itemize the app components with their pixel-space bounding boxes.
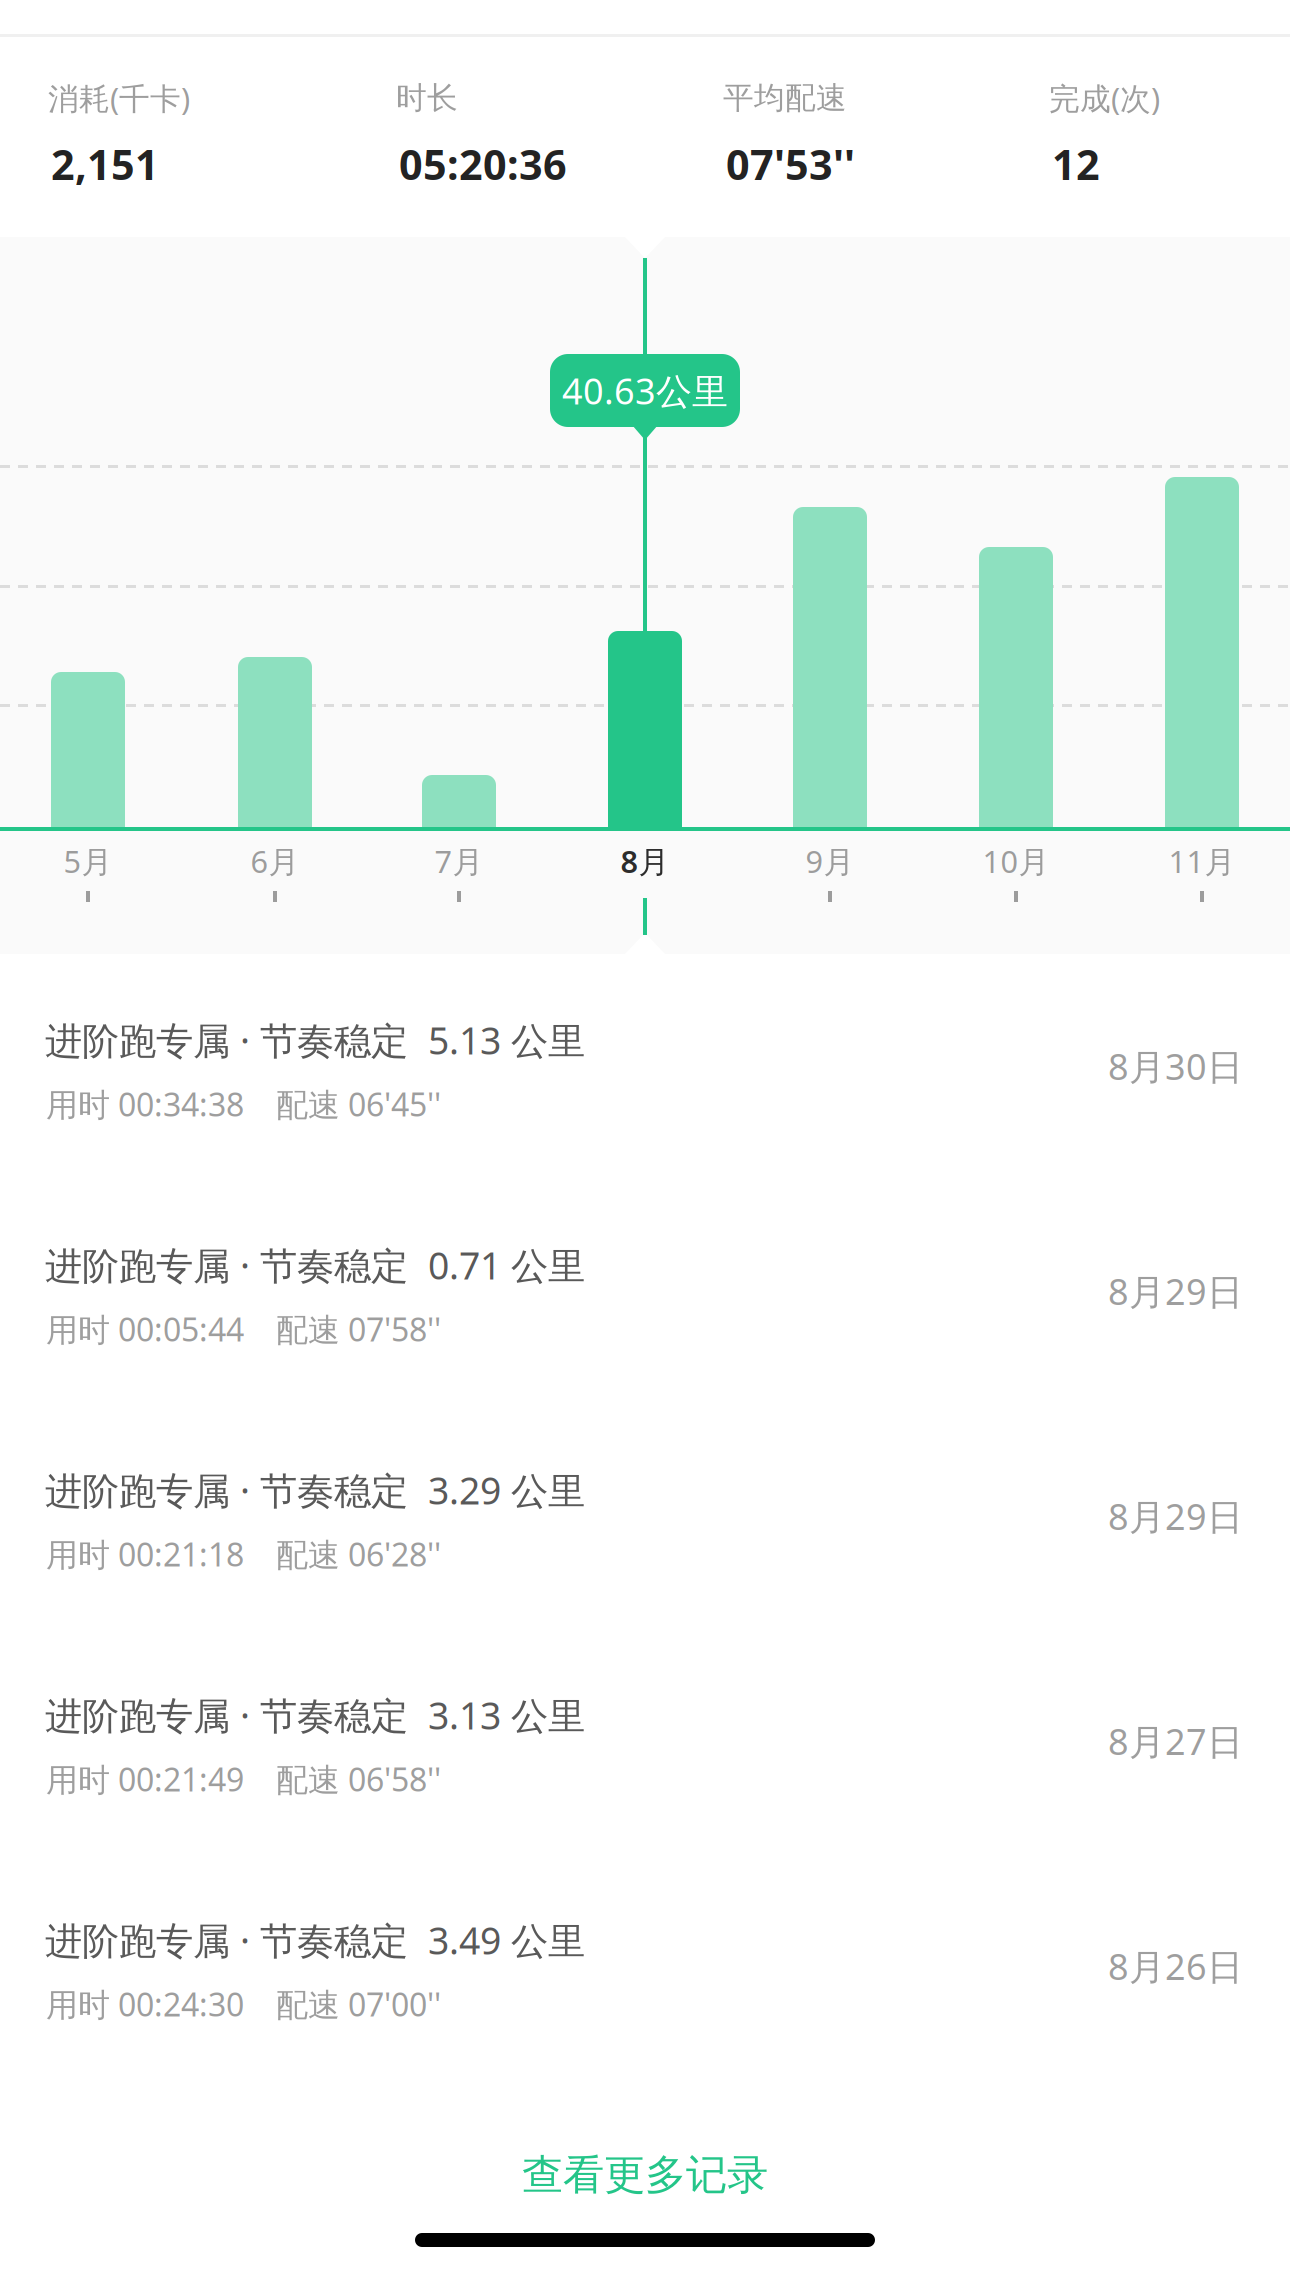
staticText: 用时 00:34:38 配速 06'45''	[46, 1083, 441, 1125]
staticText: 用时 00:24:30 配速 07'00''	[46, 1983, 441, 2025]
staticText: 2,151	[51, 137, 159, 191]
staticText: 7月	[434, 841, 483, 881]
staticText: 完成(次)	[1049, 78, 1160, 118]
staticText: 消耗(千卡)	[48, 78, 190, 118]
staticText: 进阶跑专属 · 节奏稳定 5.13 公里	[45, 1015, 585, 1065]
staticText: 12	[1052, 137, 1100, 191]
staticText: 8月26日	[1108, 1942, 1243, 1990]
button[interactable]: 进阶跑专属 · 节奏稳定 0.71 公里	[0, 1214, 1290, 1439]
staticText: 8月27日	[1108, 1717, 1243, 1765]
button[interactable]: 进阶跑专属 · 节奏稳定 5.13 公里	[0, 989, 1290, 1214]
staticText: 9月	[805, 841, 854, 881]
staticText: 10月	[982, 841, 1049, 881]
staticText: 查看更多记录	[522, 2150, 768, 2200]
staticText: 进阶跑专属 · 节奏稳定 3.13 公里	[45, 1690, 585, 1740]
staticText: 8月30日	[1108, 1042, 1243, 1090]
button[interactable]: 进阶跑专属 · 节奏稳定 3.13 公里	[0, 1664, 1290, 1889]
staticText: 11月	[1168, 841, 1235, 881]
staticText: 05:20:36	[399, 137, 567, 191]
staticText: 40.63公里	[562, 367, 728, 414]
staticText: 8月29日	[1108, 1492, 1243, 1540]
staticText: 进阶跑专属 · 节奏稳定 0.71 公里	[45, 1240, 585, 1290]
staticText: 时长	[396, 79, 458, 117]
staticText: 进阶跑专属 · 节奏稳定 3.29 公里	[45, 1465, 585, 1515]
staticText: 8月29日	[1108, 1267, 1243, 1315]
staticText: 5月	[63, 841, 112, 881]
button[interactable]: 进阶跑专属 · 节奏稳定 3.29 公里	[0, 1439, 1290, 1664]
staticText: 用时 00:21:49 配速 06'58''	[46, 1758, 441, 1800]
staticText: 8月	[620, 841, 669, 881]
button[interactable]: 进阶跑专属 · 节奏稳定 3.49 公里	[0, 1889, 1290, 2114]
staticText: 07'53''	[726, 137, 855, 191]
button[interactable]: 查看更多记录	[0, 2120, 1290, 2230]
staticText: 6月	[250, 841, 299, 881]
staticText: 用时 00:21:18 配速 06'28''	[46, 1533, 441, 1575]
staticText: 平均配速	[723, 79, 847, 117]
staticText: 用时 00:05:44 配速 07'58''	[46, 1308, 441, 1350]
staticText: 进阶跑专属 · 节奏稳定 3.49 公里	[45, 1915, 585, 1965]
